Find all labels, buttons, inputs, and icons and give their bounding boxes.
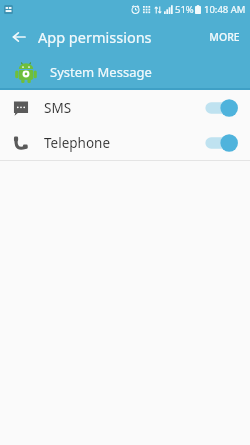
other: Telephone permission icon	[12, 134, 30, 152]
other: SMS permission icon	[12, 99, 30, 117]
button[interactable]: Navigate up	[4, 22, 34, 52]
button[interactable]: Toggle permission, on	[204, 98, 238, 118]
staticText: 10:48 AM	[204, 3, 246, 16]
button[interactable]: SMS permission icon	[0, 90, 250, 125]
staticText: App permissions	[38, 27, 152, 47]
staticText: SMS	[44, 99, 72, 117]
button[interactable]: MORE	[201, 24, 248, 50]
staticText: 51%	[175, 3, 194, 16]
button[interactable]: Telephone permission icon	[0, 125, 250, 160]
staticText: MORE	[209, 30, 240, 44]
button[interactable]: System Message	[0, 56, 250, 88]
staticText: System Message	[50, 63, 152, 81]
staticText: Telephone	[44, 134, 111, 152]
button[interactable]: Toggle permission, on	[204, 133, 238, 153]
